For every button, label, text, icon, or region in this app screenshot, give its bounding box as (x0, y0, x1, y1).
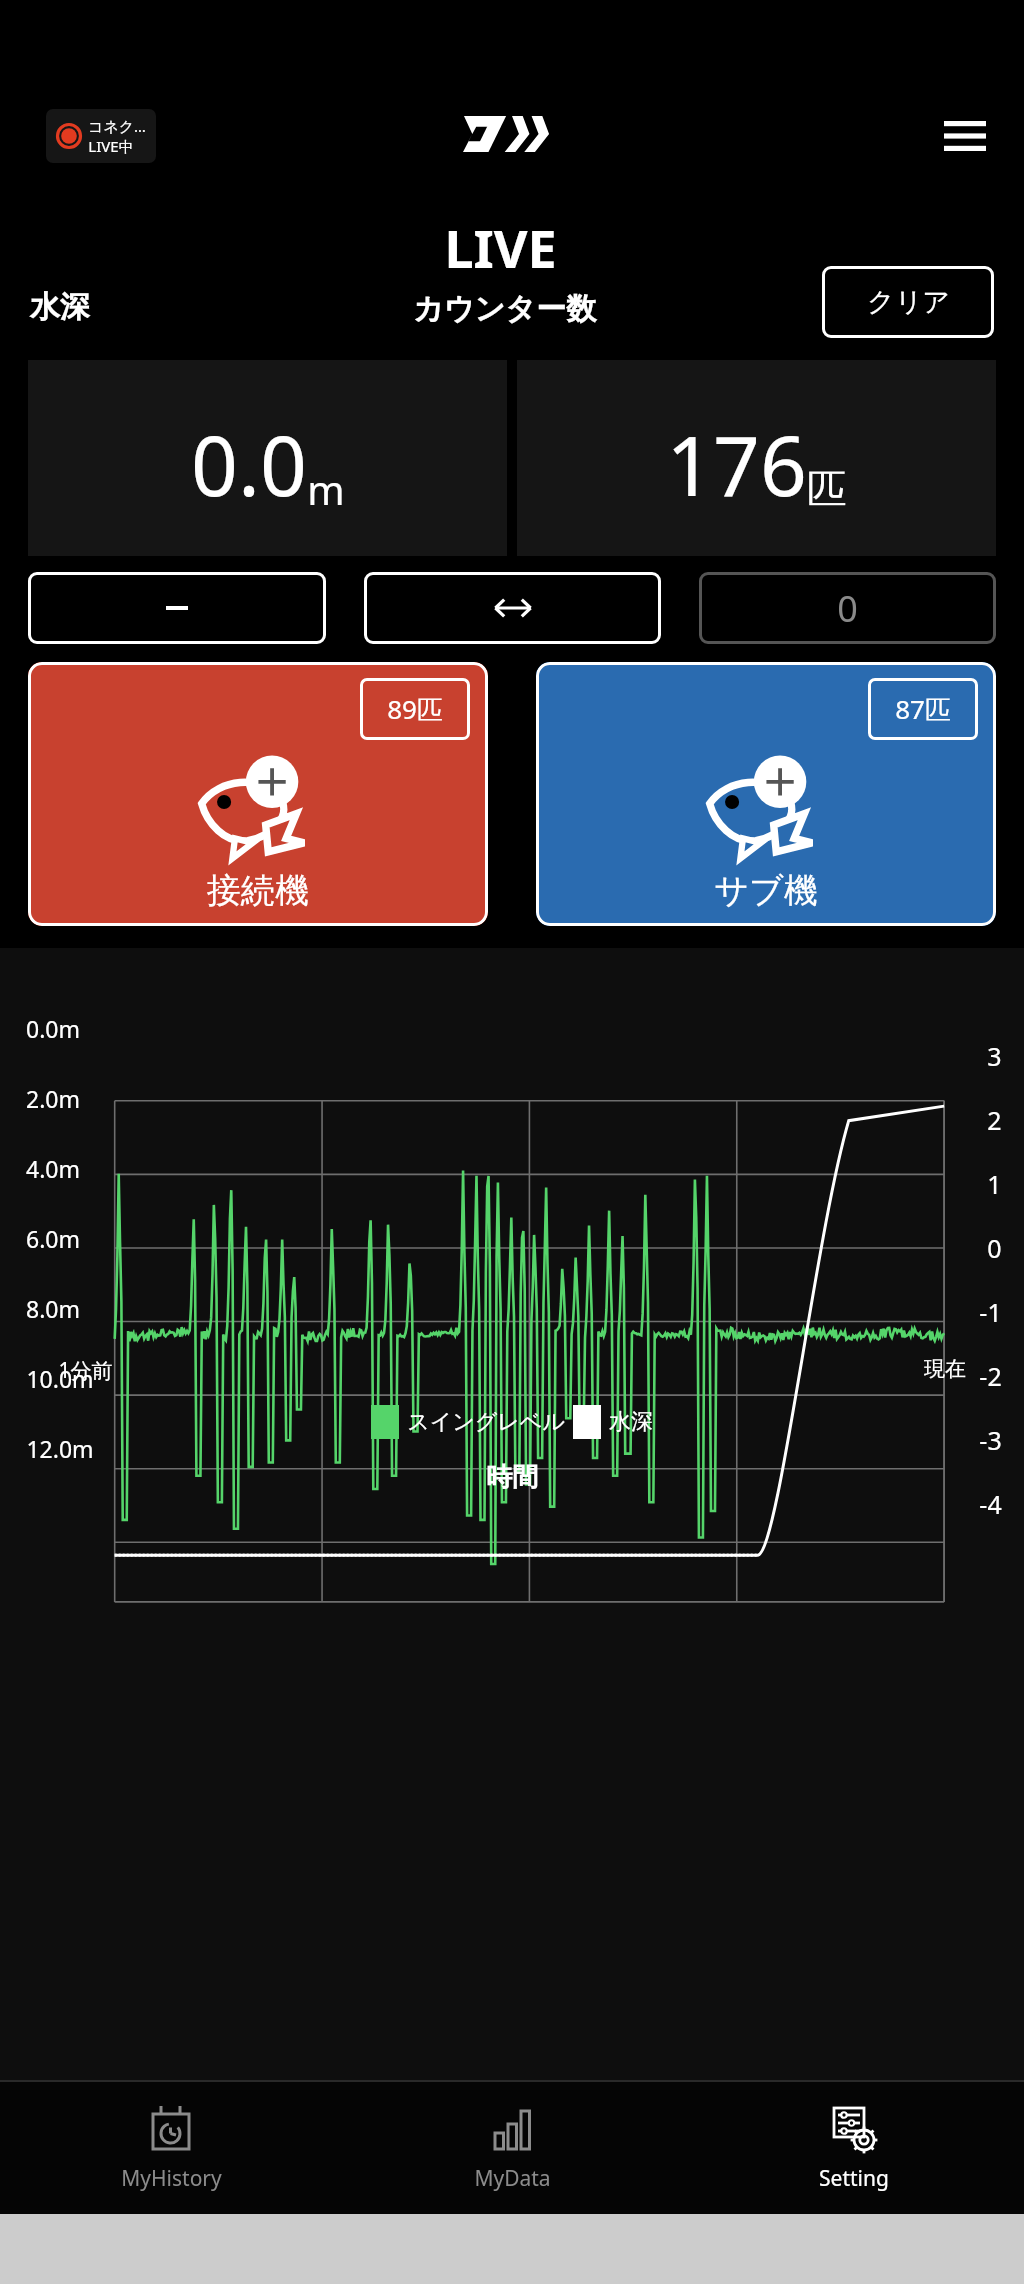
button[interactable]: Setting (683, 2082, 1024, 2214)
staticText: 現在 (924, 1356, 966, 1382)
button[interactable]: Adjust (28, 572, 326, 644)
staticText: 10.0m (26, 1363, 94, 1394)
staticText: 水深 (609, 1408, 653, 1436)
staticText: 6.0m (26, 1223, 80, 1254)
staticText: 2.0m (26, 1083, 80, 1114)
staticText: 0 (837, 584, 858, 633)
staticText: 176 (666, 408, 807, 520)
button[interactable]: 87匹 (536, 662, 996, 926)
staticText: 1分前 (58, 1356, 113, 1385)
staticText: 3 (987, 1039, 1002, 1073)
staticText: サブ機 (714, 869, 818, 912)
button[interactable]: Adjust (364, 572, 661, 644)
staticText: Setting (819, 2164, 889, 2193)
staticText: クリア (867, 285, 950, 319)
staticText: コネク… (88, 116, 146, 136)
staticText: 水深 (30, 288, 90, 326)
staticText: カウンター数 (413, 290, 596, 328)
staticText: 0 (987, 1231, 1002, 1265)
staticText: 接続機 (207, 869, 309, 912)
button[interactable]: MyData (342, 2082, 683, 2214)
staticText: LIVE (444, 212, 557, 283)
staticText: -3 (979, 1423, 1002, 1457)
staticText: MyData (474, 2164, 551, 2193)
staticText: スイングレベル (407, 1408, 565, 1436)
button[interactable]: 89匹 (28, 662, 488, 926)
staticText: -1 (979, 1295, 1002, 1329)
staticText: 時間 (486, 1461, 538, 1494)
staticText: MyHistory (121, 2164, 222, 2193)
staticText: 2 (987, 1103, 1002, 1137)
button[interactable]: Menu (936, 107, 994, 165)
staticText: 8.0m (26, 1293, 80, 1324)
staticText: 89匹 (387, 691, 443, 727)
button[interactable]: クリア (822, 266, 994, 338)
staticText: 匹 (807, 464, 847, 514)
staticText: 0.0 (191, 408, 307, 520)
button[interactable]: 0.0 (28, 360, 507, 556)
staticText: 4.0m (26, 1153, 80, 1184)
button[interactable]: コネク… (46, 109, 156, 163)
button[interactable]: Adjust (699, 572, 996, 644)
staticText: m (307, 462, 345, 516)
staticText: 87匹 (895, 691, 951, 727)
staticText: 1 (987, 1167, 1002, 1201)
button[interactable]: MyHistory (0, 2082, 342, 2214)
staticText: 0.0m (26, 1013, 80, 1044)
staticText: -2 (979, 1359, 1002, 1393)
staticText: 12.0m (26, 1433, 94, 1464)
staticText: -4 (979, 1487, 1002, 1521)
button[interactable]: 176 (517, 360, 996, 556)
staticText: LIVE中 (88, 136, 134, 156)
